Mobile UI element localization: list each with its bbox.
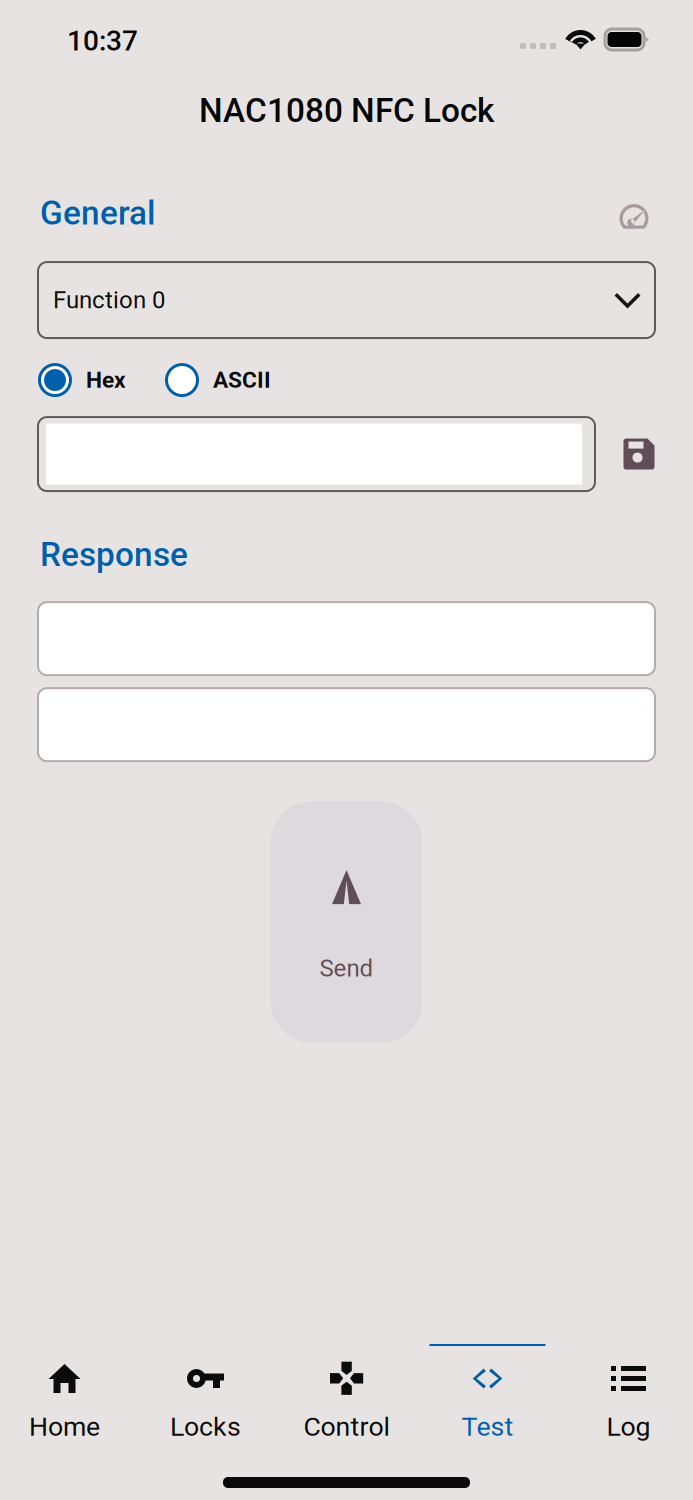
button[interactable]: Diagnostics [613,193,657,233]
button[interactable]: Locks [135,1344,276,1456]
button[interactable]: Log [558,1344,693,1456]
staticText: Control [303,1411,389,1442]
button[interactable]: Save [610,417,668,491]
staticText: ASCII [213,367,271,393]
button[interactable]: Send [270,801,422,1043]
staticText: 10:37 [67,25,138,57]
staticText: Function 0 [53,286,165,314]
staticText: Send [319,954,373,982]
staticText: Hex [86,367,126,393]
staticText: Home [29,1411,100,1442]
button[interactable]: Function 0 [38,262,655,338]
staticText: NAC1080 NFC Lock [199,91,494,130]
button[interactable]: Control [276,1344,417,1456]
button[interactable]: Test [417,1344,558,1456]
button[interactable]: Home [0,1344,135,1456]
button[interactable]: Hex [38,363,126,397]
staticText: General [40,193,155,233]
button[interactable]: ASCII [165,363,271,397]
staticText: Locks [170,1411,241,1442]
staticText: Response [40,535,188,574]
staticText: Test [461,1411,513,1442]
staticText: Log [606,1411,650,1442]
